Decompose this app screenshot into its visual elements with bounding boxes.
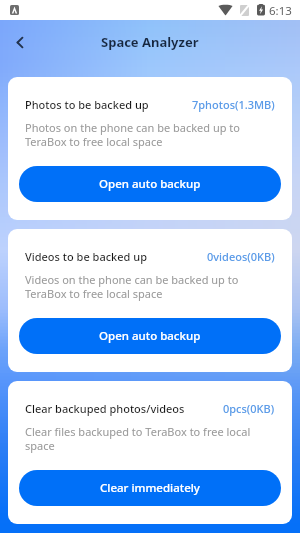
button[interactable]: Back	[3, 26, 35, 58]
staticText: Clear files backuped to TeraBox to free …	[25, 424, 275, 453]
staticText: Clear backuped photos/videos	[25, 401, 185, 416]
staticText: Photos to be backed up	[25, 97, 149, 112]
staticText: Videos to be backed up	[25, 249, 147, 264]
staticText: 0videos(0KB)	[207, 249, 275, 264]
staticText: Space Analyzer	[101, 33, 199, 51]
staticText: Open auto backup	[99, 328, 201, 344]
staticText: 0pcs(0KB)	[223, 401, 275, 416]
button[interactable]: Open auto backup	[19, 166, 281, 202]
staticText: 6:13	[269, 3, 292, 19]
staticText: 7photos(1.3MB)	[192, 97, 275, 112]
button[interactable]: Open auto backup	[19, 318, 281, 354]
button[interactable]: Clear immediately	[19, 470, 281, 506]
staticText: Photos on the phone can be backed up to …	[25, 120, 275, 149]
staticText: Clear immediately	[100, 480, 200, 496]
staticText: Open auto backup	[99, 176, 201, 192]
staticText: Videos on the phone can be backed up to …	[25, 272, 275, 301]
